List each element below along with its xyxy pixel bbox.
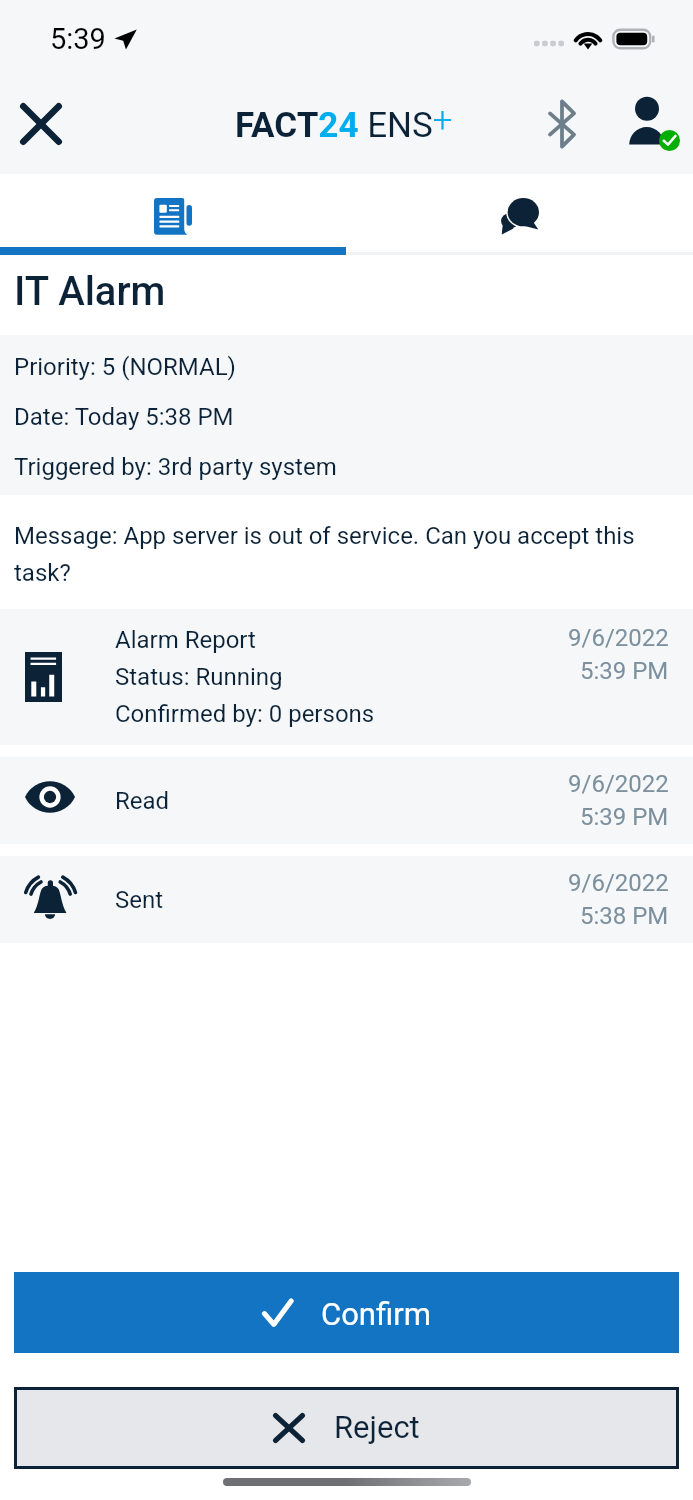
button[interactable]: Read bbox=[0, 757, 693, 844]
button[interactable]: Reject bbox=[14, 1387, 679, 1469]
staticText: 9/6/2022 bbox=[568, 770, 669, 798]
button[interactable]: Sent bbox=[0, 856, 693, 943]
staticText: 5:39 PM bbox=[580, 803, 669, 831]
staticText: Message: App server is out of service. C… bbox=[14, 522, 663, 587]
staticText: 5:38 PM bbox=[580, 902, 669, 930]
button[interactable]: Alarms bbox=[0, 174, 346, 247]
staticText: Reject bbox=[334, 1409, 420, 1445]
staticText: Date: Today 5:38 PM bbox=[14, 403, 234, 431]
staticText: FACT24 ENS+ bbox=[235, 100, 453, 146]
button[interactable]: Alarm Report bbox=[0, 609, 693, 745]
button[interactable]: Account bbox=[629, 93, 691, 155]
staticText: Alarm Report bbox=[115, 626, 256, 654]
staticText: Confirmed by: 0 persons bbox=[115, 700, 375, 728]
staticText: Priority: 5 (NORMAL) bbox=[14, 353, 236, 381]
button[interactable]: Close bbox=[11, 94, 71, 154]
staticText: IT Alarm bbox=[14, 268, 166, 315]
staticText: Sent bbox=[115, 886, 164, 914]
staticText: Confirm bbox=[321, 1296, 431, 1332]
staticText: 9/6/2022 bbox=[568, 869, 669, 897]
staticText: Triggered by: 3rd party system bbox=[14, 453, 337, 481]
staticText: Read bbox=[115, 787, 170, 815]
button[interactable]: Bluetooth bbox=[532, 94, 592, 154]
button[interactable]: Chat bbox=[346, 174, 693, 247]
staticText: 9/6/2022 bbox=[568, 624, 669, 652]
button[interactable]: Confirm bbox=[14, 1272, 679, 1353]
staticText: Status: Running bbox=[115, 663, 283, 691]
staticText: 5:39 PM bbox=[580, 657, 669, 685]
staticText: 5:39 bbox=[50, 22, 106, 56]
